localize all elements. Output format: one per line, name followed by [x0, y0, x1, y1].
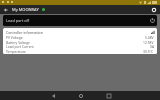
- staticText: 12.58V: [143, 40, 154, 44]
- staticText: Load port off: [6, 18, 30, 23]
- button[interactable]: Load port off: [3, 15, 157, 26]
- staticText: 0A: [150, 44, 154, 48]
- button[interactable]: Settings: [148, 5, 160, 14]
- button[interactable]: Power toggle: [149, 17, 156, 24]
- staticText: 5.48V: [145, 35, 154, 39]
- button[interactable]: Back: [45, 91, 61, 100]
- staticText: Load port Current: [6, 44, 34, 48]
- button[interactable]: Home: [73, 91, 89, 100]
- staticText: Temperature: [6, 49, 26, 53]
- button[interactable]: Recent apps: [101, 91, 117, 100]
- staticText: My MOONRAY: [12, 7, 39, 12]
- staticText: 30.5°C: [143, 49, 154, 53]
- staticText: Controller information: [6, 30, 43, 35]
- staticText: Battery Voltage: [6, 40, 30, 44]
- staticText: PV Voltage: [6, 35, 23, 39]
- button[interactable]: Back: [0, 5, 12, 14]
